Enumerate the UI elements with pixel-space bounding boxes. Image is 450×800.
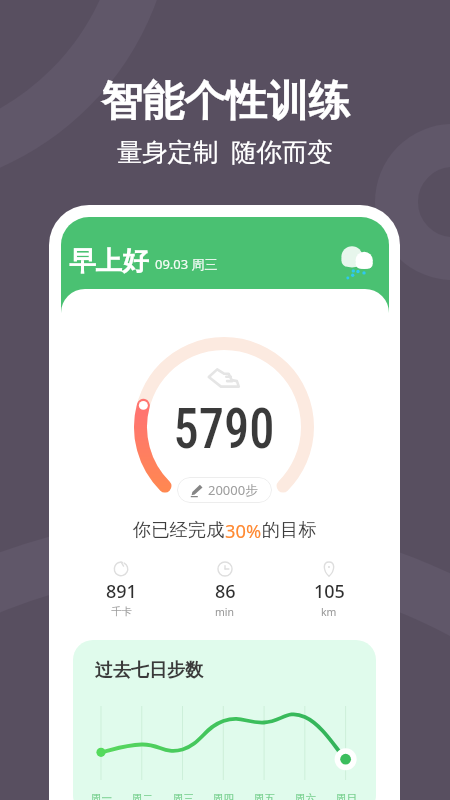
staticText: 30%	[225, 518, 262, 543]
staticText: 20000步	[208, 481, 259, 499]
button[interactable]: 891	[81, 561, 161, 618]
staticText: 周日	[336, 792, 357, 800]
staticText: 周二	[132, 792, 153, 800]
staticText: 891	[106, 579, 137, 604]
staticText: 105	[314, 579, 345, 604]
button[interactable]: 过去七日步数	[73, 640, 376, 800]
staticText: 过去七日步数	[95, 659, 203, 682]
staticText: 早上好	[69, 244, 149, 277]
staticText: 你已经完成	[133, 518, 225, 541]
staticText: 86	[215, 579, 236, 604]
staticText: 周一	[91, 792, 112, 800]
staticText: 周六	[295, 792, 316, 800]
staticText: 周五	[254, 792, 275, 800]
button[interactable]: 86	[185, 561, 265, 619]
staticText: 千卡	[111, 605, 132, 618]
button[interactable]: Weather	[327, 234, 375, 282]
staticText: 的目标	[262, 518, 317, 541]
button[interactable]: 20000步	[177, 477, 272, 503]
staticText: 5790	[174, 397, 274, 461]
staticText: 智能个性训练	[101, 75, 350, 127]
staticText: 09.03 周三	[155, 255, 218, 273]
button[interactable]: 105	[289, 561, 369, 619]
staticText: km	[321, 605, 337, 619]
staticText: 量身定制 随你而变	[117, 134, 333, 169]
staticText: min	[215, 605, 235, 619]
staticText: 周四	[213, 792, 234, 800]
staticText: 周三	[173, 792, 194, 800]
